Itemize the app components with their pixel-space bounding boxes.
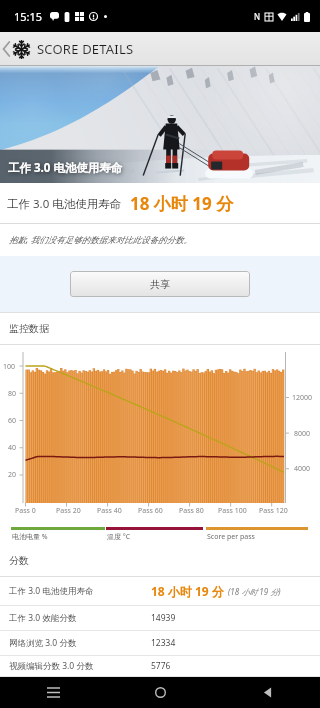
- staticText: 40: [8, 443, 17, 453]
- button[interactable]: 工作 3.0 电池使用寿命: [0, 577, 320, 605]
- staticText: 共享: [150, 278, 170, 291]
- staticText: Pass 100: [218, 506, 247, 516]
- staticText: Pass 80: [179, 506, 204, 516]
- button[interactable]: Recent apps: [28, 677, 78, 708]
- staticText: 温度 °C: [107, 532, 131, 542]
- staticText: 电池电量 %: [12, 532, 48, 542]
- staticText: 80: [8, 389, 17, 399]
- staticText: 工作 3.0 效能分数: [9, 612, 77, 624]
- staticText: 20: [8, 470, 17, 480]
- staticText: 60: [8, 416, 17, 426]
- staticText: SCORE DETAILS: [37, 40, 134, 58]
- staticText: Pass 40: [97, 506, 122, 516]
- staticText: 5776: [151, 660, 171, 672]
- staticText: 工作 3.0 电池使用寿命: [9, 585, 94, 597]
- staticText: 15:15: [14, 9, 43, 24]
- staticText: 12334: [151, 637, 176, 649]
- staticText: Pass 0: [15, 506, 36, 516]
- staticText: 工作 3.0 电池使用寿命: [8, 160, 123, 176]
- staticText: N: [254, 11, 261, 22]
- button[interactable]: Home: [135, 677, 185, 708]
- staticText: Pass 60: [138, 506, 163, 516]
- button[interactable]: Back: [242, 677, 292, 708]
- staticText: (18 小时 19 分): [228, 586, 281, 597]
- staticText: Pass 120: [259, 506, 288, 516]
- staticText: 14939: [151, 612, 176, 624]
- button[interactable]: 网络浏览 3.0 分数: [0, 631, 320, 655]
- staticText: Pass 20: [56, 506, 81, 516]
- staticText: 监控数据: [9, 322, 49, 335]
- button[interactable]: Back: [0, 34, 12, 64]
- staticText: 18 小时 19 分: [151, 583, 224, 599]
- staticText: 网络浏览 3.0 分数: [9, 637, 77, 649]
- staticText: 分数: [9, 554, 29, 567]
- button[interactable]: 视频编辑分数 3.0 分数: [0, 656, 320, 676]
- staticText: 3.0: [126, 167, 135, 175]
- staticText: 视频编辑分数 3.0 分数: [9, 660, 94, 672]
- staticText: 12000: [292, 393, 313, 403]
- staticText: 4000: [294, 464, 311, 474]
- staticText: Score per pass: [207, 532, 255, 542]
- staticText: 18 小时 19 分: [130, 192, 234, 215]
- button[interactable]: 共享: [70, 271, 250, 297]
- staticText: 工作 3.0 电池使用寿命: [7, 196, 122, 212]
- button[interactable]: 工作 3.0 效能分数: [0, 606, 320, 630]
- staticText: 100: [3, 362, 16, 372]
- staticText: 8000: [294, 429, 311, 439]
- staticText: 抱歉, 我们没有足够的数据来对比此设备的分数。: [9, 234, 192, 246]
